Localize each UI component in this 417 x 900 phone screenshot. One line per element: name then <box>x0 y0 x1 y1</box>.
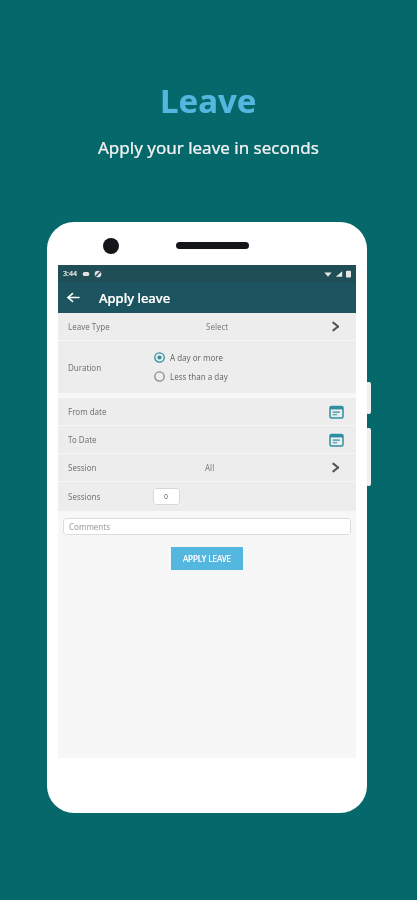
button[interactable]: Leave Type <box>58 313 356 340</box>
button[interactable]: From date <box>58 398 356 425</box>
staticText: APPLY LEAVE <box>183 553 232 564</box>
button[interactable]: APPLY LEAVE <box>171 547 243 570</box>
other: Open <box>329 461 342 474</box>
staticText: Apply your leave in seconds <box>98 136 319 159</box>
button[interactable]: 0 <box>153 488 180 505</box>
button[interactable]: Back <box>58 282 89 313</box>
staticText: 0 <box>164 492 169 502</box>
button[interactable]: Less than a day <box>154 371 228 382</box>
staticText: All <box>205 462 215 473</box>
staticText: From date <box>68 406 107 417</box>
staticText: Sessions <box>68 491 101 502</box>
staticText: Apply leave <box>99 289 171 307</box>
button[interactable]: Pick date <box>330 405 343 418</box>
button[interactable]: Duration <box>58 341 356 393</box>
staticText: Comments <box>69 521 111 532</box>
staticText: Session <box>68 462 97 473</box>
button[interactable]: Session <box>58 454 356 481</box>
staticText: Leave Type <box>68 321 110 332</box>
button[interactable]: To Date <box>58 426 356 453</box>
staticText: A day or more <box>170 352 223 363</box>
staticText: Less than a day <box>170 371 228 382</box>
staticText: Leave <box>160 78 257 123</box>
staticText: 3:44 <box>63 269 77 279</box>
button[interactable]: Comments <box>63 518 351 535</box>
staticText: Select <box>206 321 229 332</box>
staticText: Duration <box>68 362 102 373</box>
button[interactable]: Pick date <box>330 433 343 446</box>
button[interactable]: A day or more <box>154 352 223 363</box>
other: Open <box>329 320 342 333</box>
staticText: To Date <box>68 434 97 445</box>
